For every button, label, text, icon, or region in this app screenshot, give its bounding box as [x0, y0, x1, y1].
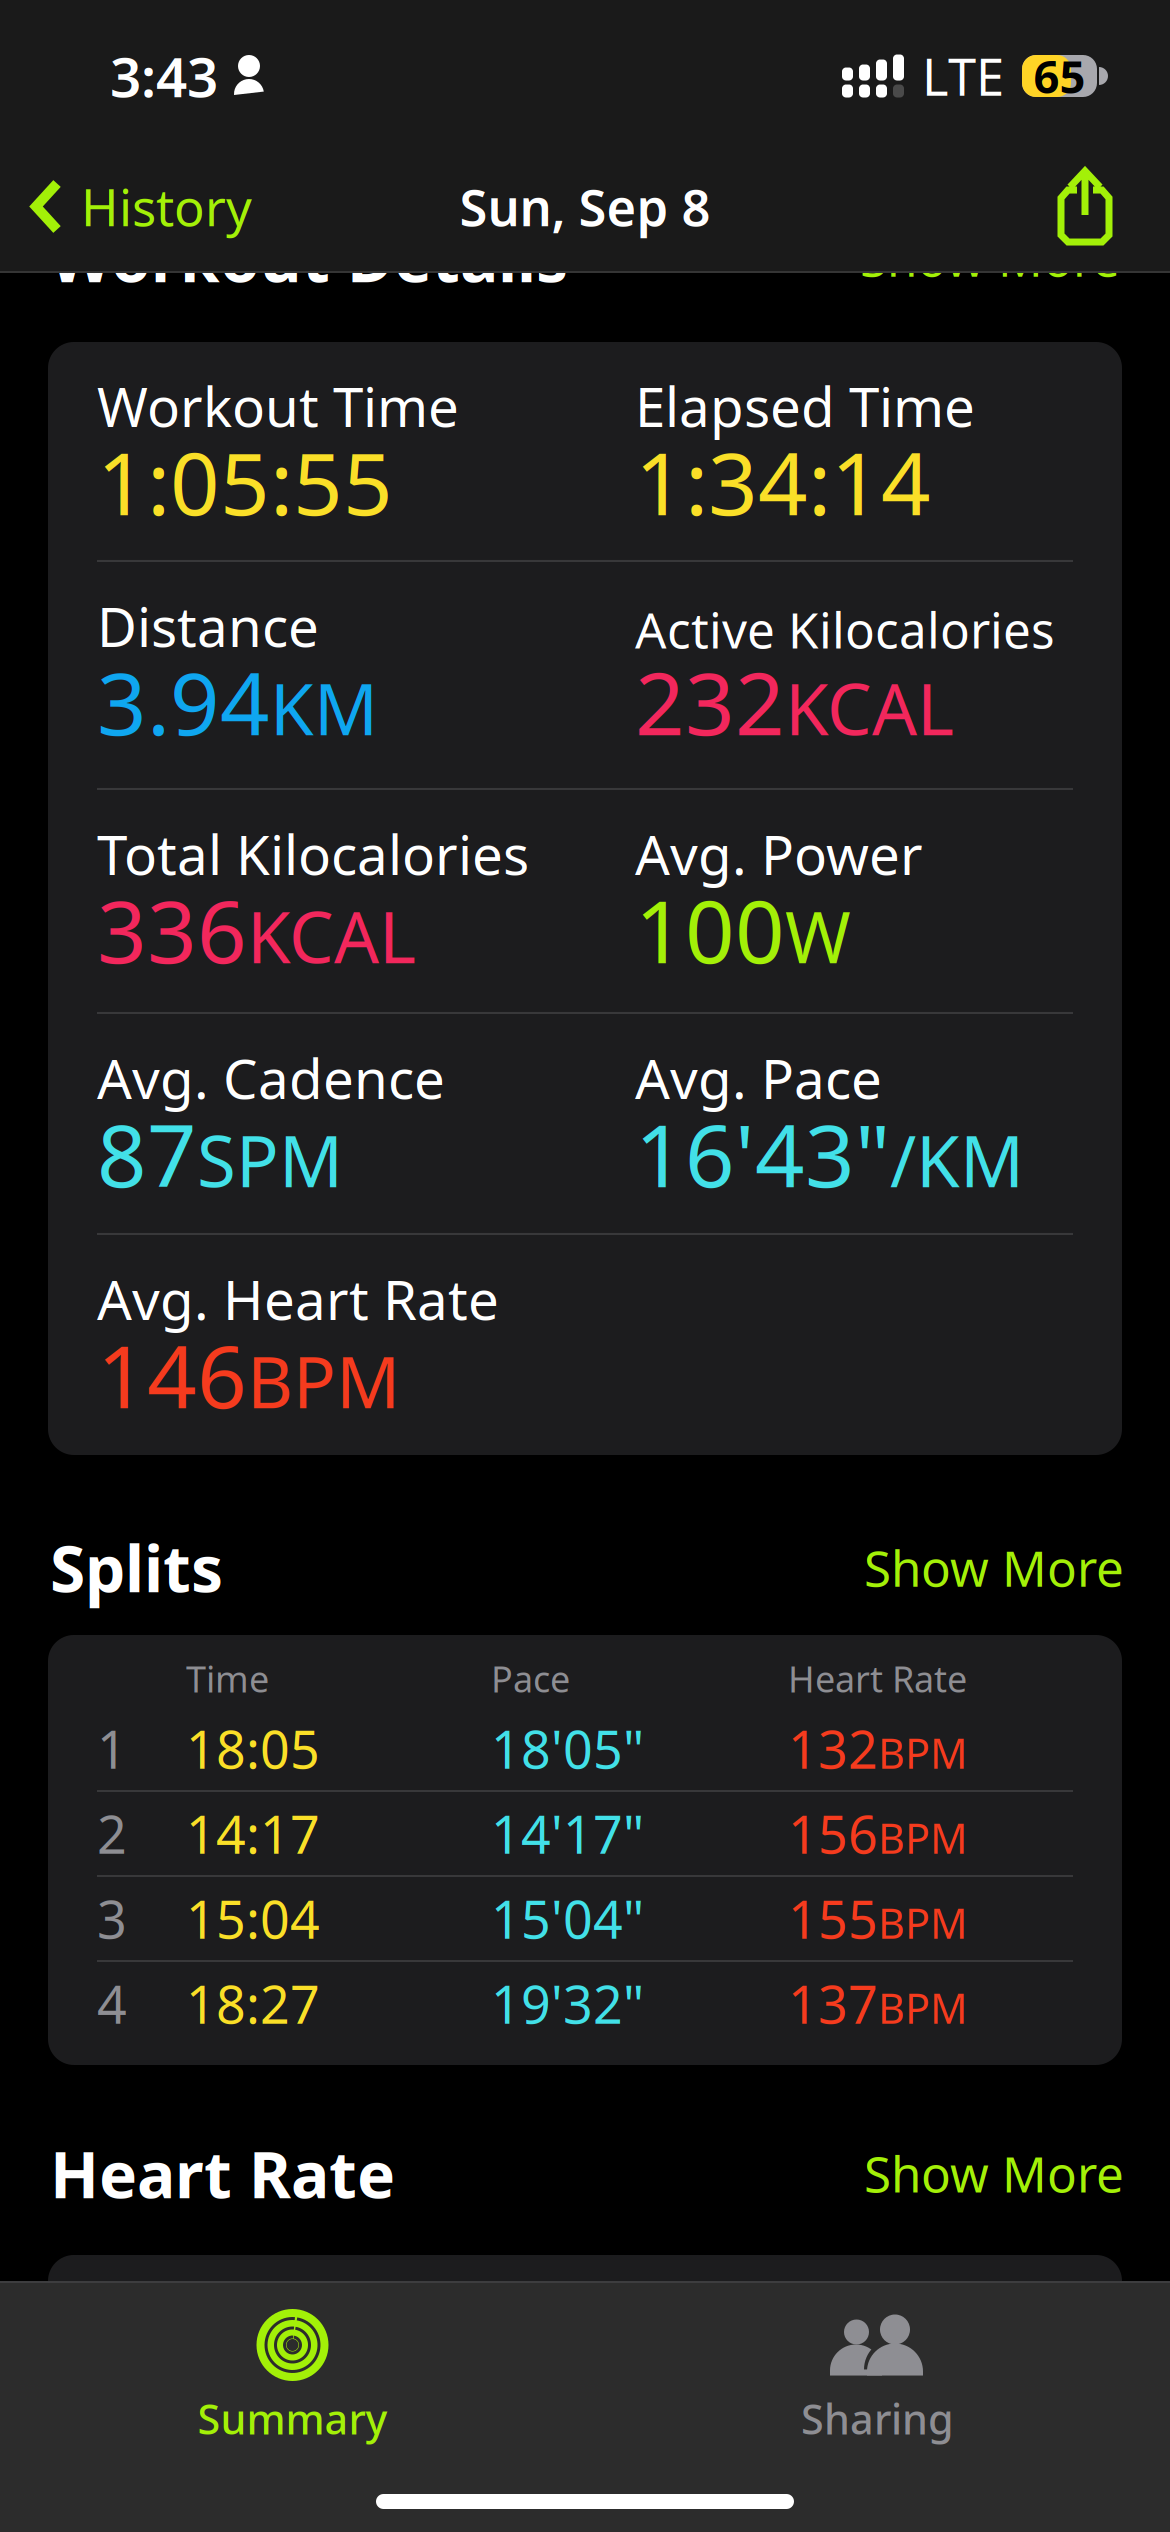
staticText: 336KCAL — [97, 872, 416, 987]
staticText: 65 — [1033, 46, 1085, 106]
staticText: Workout Details — [50, 215, 568, 300]
staticText: 14'17" — [491, 1799, 644, 1868]
staticText: 4 — [97, 1969, 127, 2038]
button[interactable]: History — [0, 157, 252, 256]
staticText: 15:04 — [186, 1884, 320, 1953]
staticText: Show More — [864, 1535, 1124, 1600]
staticText: 1:34:14 — [635, 424, 931, 539]
staticText: LTE — [922, 42, 1004, 110]
staticText: Avg. Heart Rate — [97, 1262, 499, 1335]
staticText: 1:05:55 — [97, 424, 393, 539]
staticText: 18:05 — [186, 1714, 320, 1783]
staticText: 18:27 — [186, 1969, 320, 2038]
staticText: Distance — [97, 589, 319, 662]
button[interactable]: Summary — [0, 2283, 585, 2446]
staticText: Avg. Power — [635, 817, 923, 890]
staticText: 146BPM — [97, 1317, 400, 1432]
staticText: Avg. Cadence — [97, 1041, 445, 1114]
staticText: 100W — [635, 872, 851, 987]
staticText: 14:17 — [186, 1799, 320, 1868]
staticText: Sun, Sep 8 — [459, 173, 710, 240]
staticText: Avg. Pace — [635, 1041, 882, 1114]
staticText: 16'43"/KM — [635, 1096, 1024, 1211]
staticText: Active Kilocalories — [635, 596, 1055, 662]
staticText: 3 — [97, 1884, 127, 1953]
button[interactable]: Show More — [864, 1535, 1124, 1600]
staticText: Heart Rate — [50, 2131, 395, 2216]
staticText: 156BPM — [788, 1799, 967, 1868]
staticText: 155BPM — [788, 1884, 967, 1953]
staticText: 15'04" — [491, 1884, 644, 1953]
staticText: Total Kilocalories — [97, 817, 529, 890]
staticText: 18'05" — [491, 1714, 644, 1783]
staticText: Heart Rate — [788, 1655, 967, 1702]
staticText: Time — [186, 1655, 269, 1702]
button[interactable]: Share — [1057, 157, 1170, 256]
staticText: Splits — [50, 1525, 223, 1610]
staticText: 3.94KM — [97, 644, 378, 759]
staticText: Elapsed Time — [635, 369, 975, 442]
staticText: 2 — [97, 1799, 127, 1868]
staticText: Show More — [864, 2141, 1124, 2206]
staticText: 19'32" — [491, 1969, 644, 2038]
staticText: Sharing — [801, 2391, 954, 2446]
staticText: Pace — [491, 1655, 570, 1702]
staticText: 132BPM — [788, 1714, 967, 1783]
staticText: 137BPM — [788, 1969, 967, 2038]
staticText: 1 — [97, 1714, 127, 1783]
staticText: 3:43 — [110, 40, 218, 112]
staticText: Show More — [860, 225, 1120, 290]
staticText: Workout Time — [97, 369, 459, 442]
staticText: 87SPM — [97, 1096, 343, 1211]
button[interactable]: Show More — [864, 2141, 1124, 2206]
staticText: 232KCAL — [635, 644, 954, 759]
staticText: Summary — [197, 2391, 387, 2446]
staticText: History — [81, 173, 252, 240]
button[interactable]: Sharing — [585, 2283, 1170, 2446]
